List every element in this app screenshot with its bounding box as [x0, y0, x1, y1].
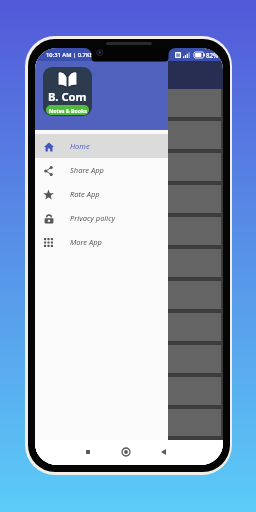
button[interactable]: Rate App [35, 182, 168, 206]
staticText: Share App [70, 165, 104, 175]
button[interactable]: Recents [82, 446, 93, 457]
staticText: 82% [206, 51, 219, 59]
button[interactable]: Home [120, 446, 132, 458]
button[interactable]: Privacy policy [35, 206, 168, 230]
button[interactable]: Home [35, 134, 168, 158]
staticText: Rate App [70, 189, 100, 199]
staticText: Privacy policy [70, 213, 116, 223]
staticText: Notes & Books [49, 107, 87, 114]
button[interactable]: More App [35, 230, 168, 254]
staticText: 10:31 AM | 0.7KB [46, 51, 94, 59]
button[interactable]: Share App [35, 158, 168, 182]
button[interactable]: Back [158, 446, 169, 457]
staticText: B. Com [48, 89, 87, 104]
staticText: More App [70, 237, 102, 247]
staticText: Home [70, 141, 90, 151]
